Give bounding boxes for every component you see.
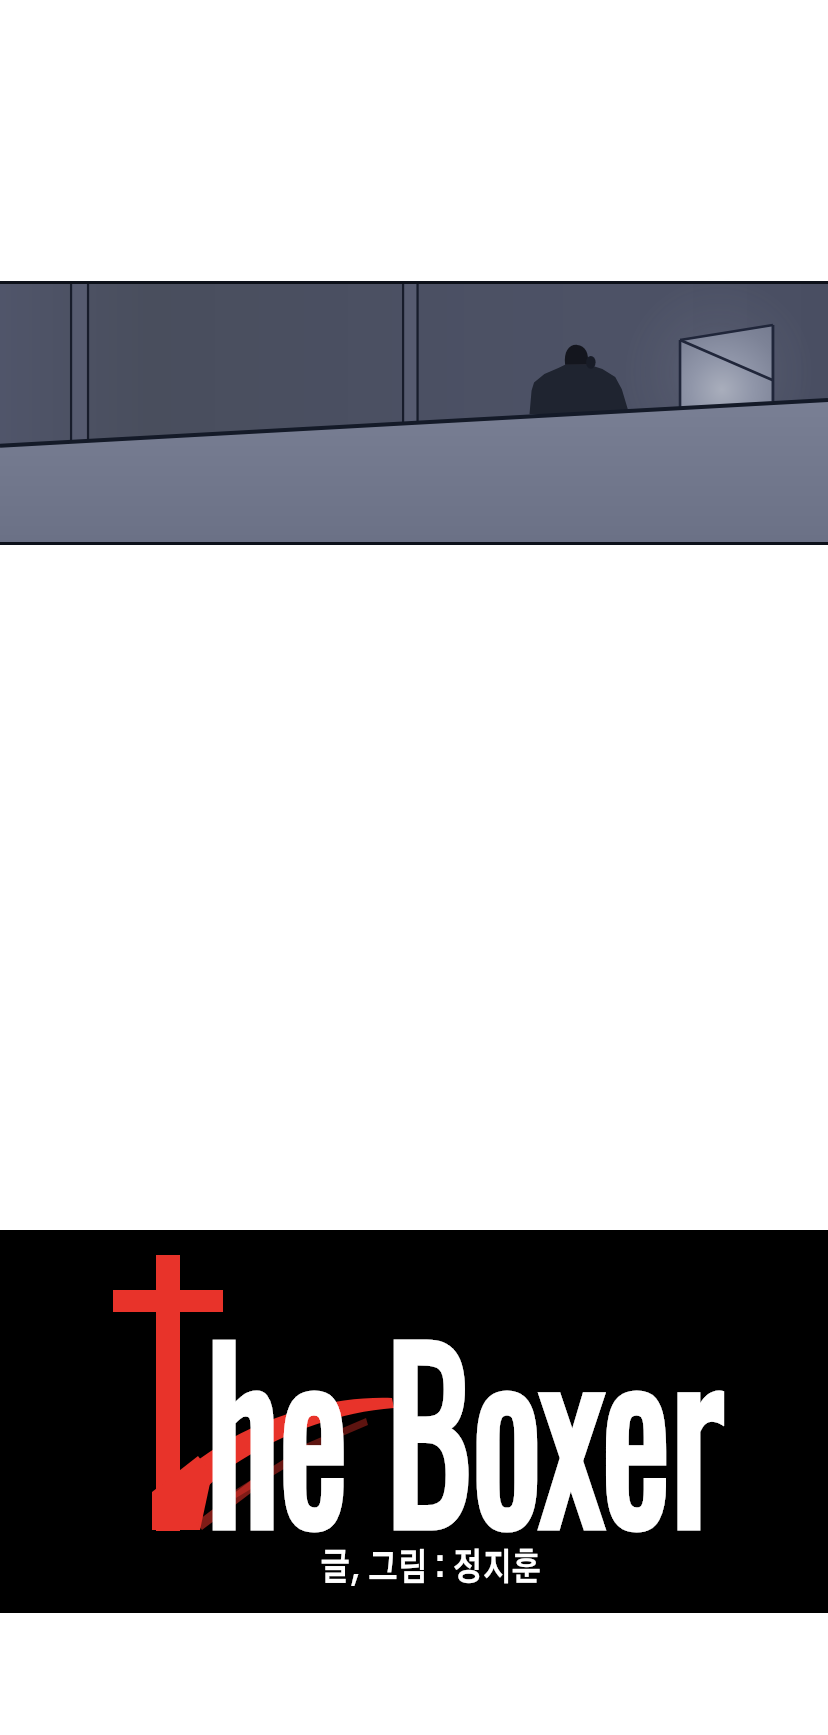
staticText: he Boxer [206,1257,724,1592]
button[interactable]: Title card: The Boxer [0,1230,828,1613]
staticText: 글, 그림 : 정지훈 [321,1550,541,1587]
button[interactable]: Comic panel: a man on a rooftop at night [0,281,828,545]
